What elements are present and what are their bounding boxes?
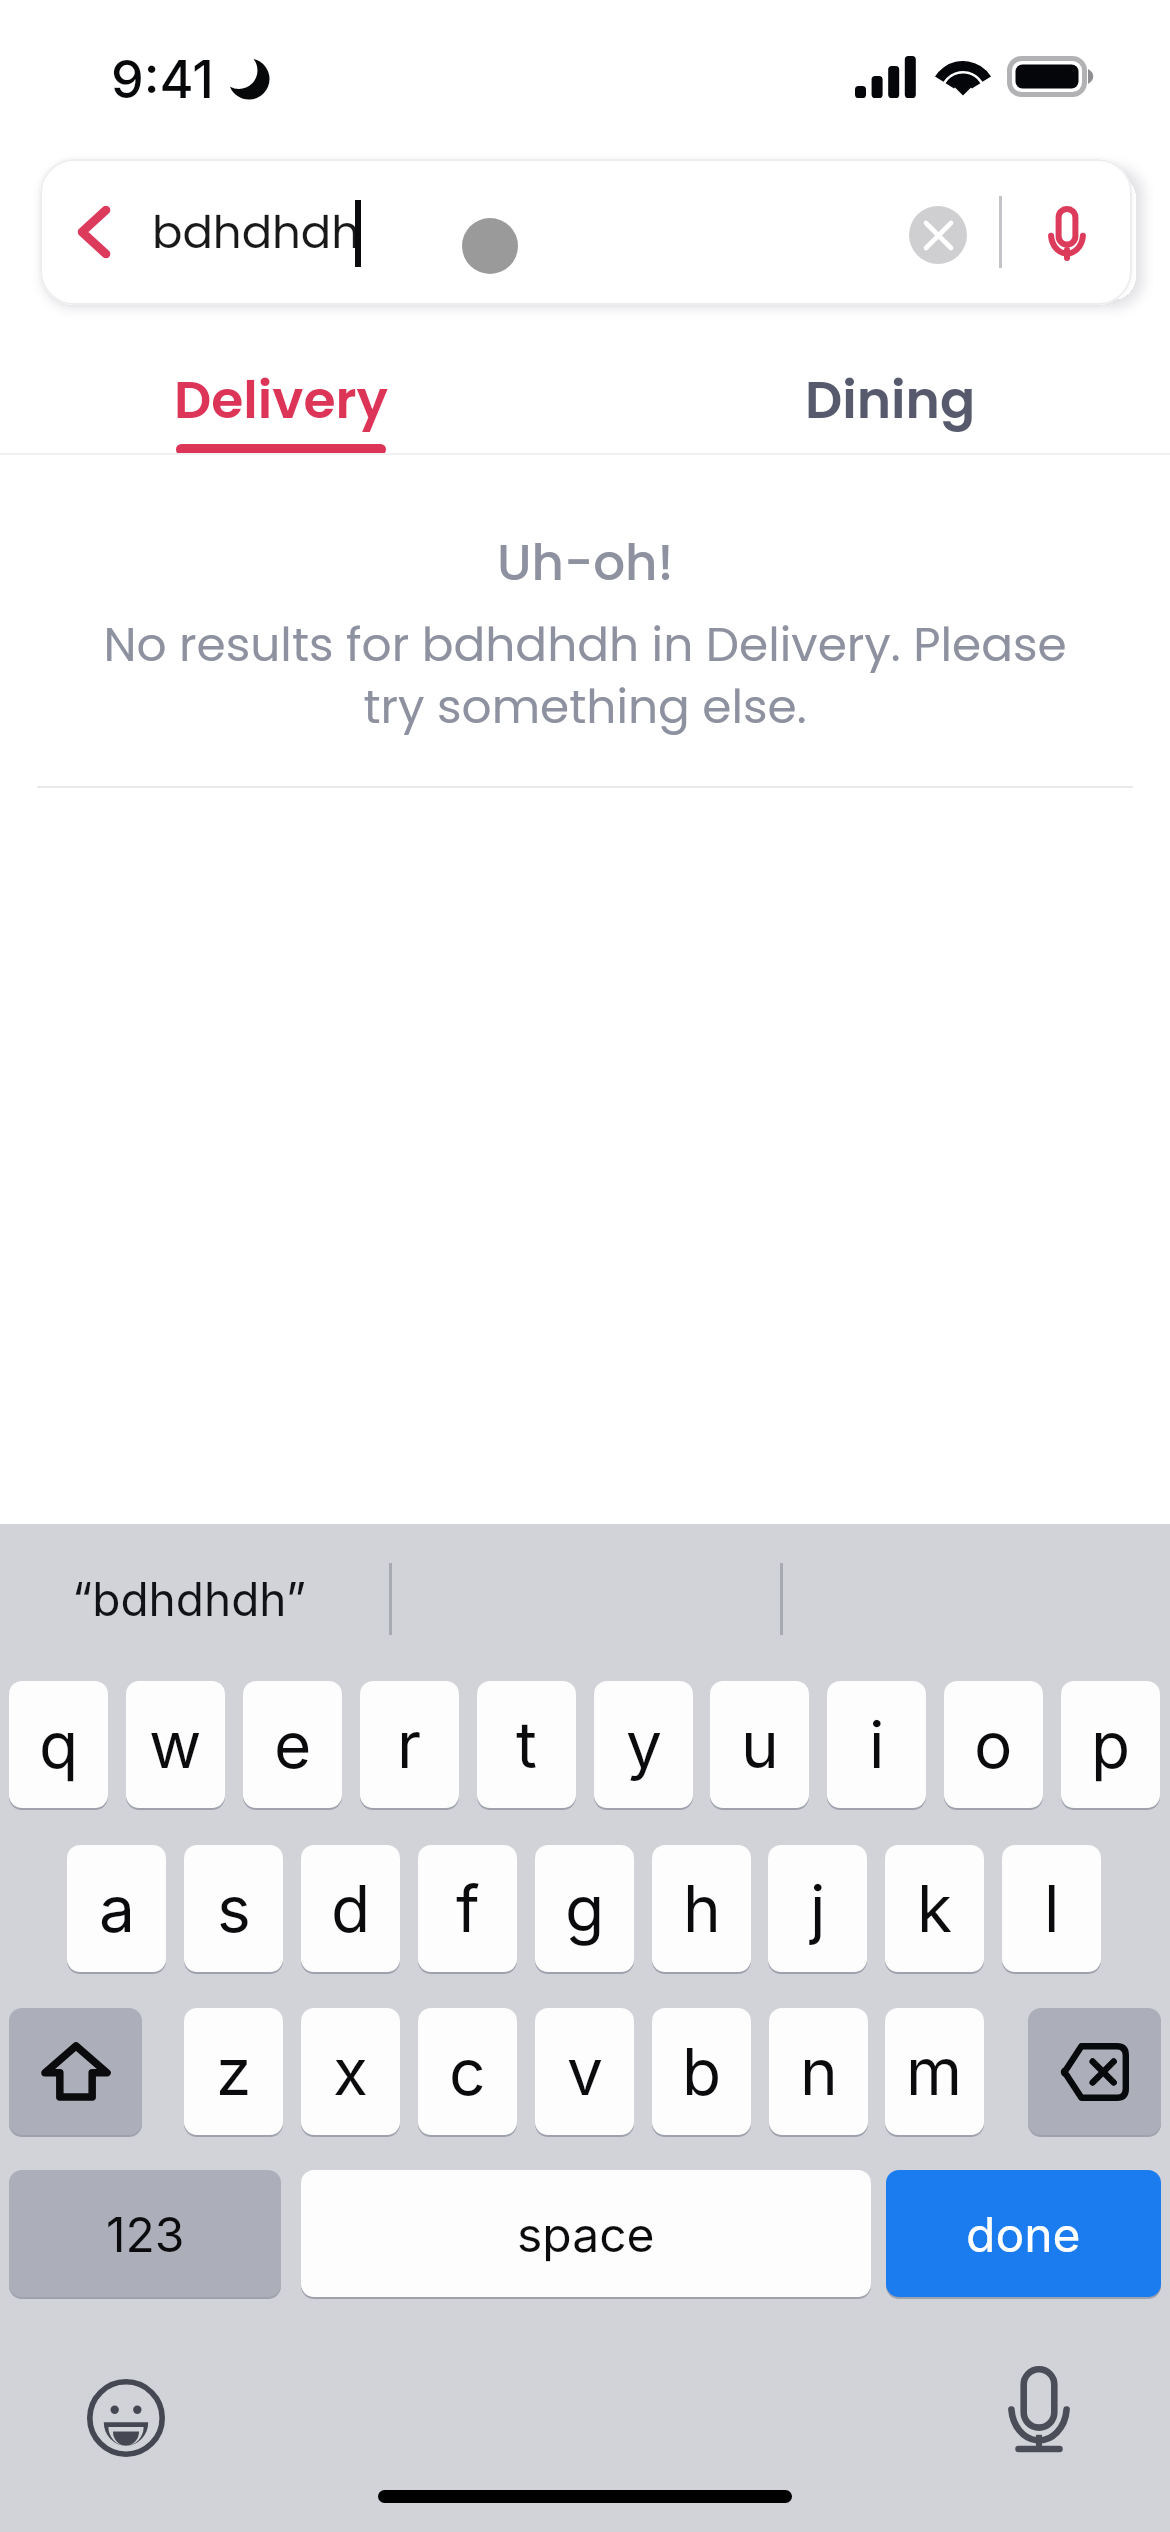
button[interactable]: Dining (598, 363, 1170, 455)
button[interactable]: h (652, 1845, 751, 1972)
button[interactable]: n (769, 2008, 868, 2135)
button[interactable]: w (126, 1681, 225, 1808)
button[interactable]: done (886, 2170, 1161, 2297)
staticText: s (217, 1870, 251, 1947)
button[interactable]: v (535, 2008, 634, 2135)
staticText: Delivery (174, 363, 388, 436)
button[interactable]: c (418, 2008, 517, 2135)
staticText: d (331, 1870, 371, 1947)
button[interactable]: Delivery (0, 363, 573, 455)
staticText: w (149, 1706, 202, 1783)
button[interactable]: space (301, 2170, 871, 2297)
staticText: b (682, 2033, 722, 2110)
button[interactable]: l (1002, 1845, 1101, 1972)
button[interactable]: Backspace (1028, 2008, 1161, 2135)
staticText: j (810, 1870, 826, 1947)
button[interactable]: m (885, 2008, 984, 2135)
staticText: v (567, 2033, 603, 2110)
staticText: t (516, 1706, 537, 1783)
button[interactable]: a (67, 1845, 166, 1972)
staticText: space (517, 2205, 655, 2263)
staticText: done (966, 2205, 1081, 2263)
staticText: y (626, 1706, 662, 1783)
button[interactable]: o (944, 1681, 1043, 1808)
button[interactable]: Back (40, 179, 148, 285)
staticText: c (449, 2033, 486, 2110)
staticText: i (869, 1706, 885, 1783)
button[interactable]: e (243, 1681, 342, 1808)
button[interactable]: Dictation (996, 2366, 1082, 2452)
button[interactable]: y (594, 1681, 693, 1808)
button[interactable]: g (535, 1845, 634, 1972)
staticText: o (974, 1706, 1013, 1783)
staticText: q (39, 1706, 79, 1783)
staticText: “bdhdhdh” (72, 1571, 306, 1627)
staticText: r (397, 1706, 422, 1783)
staticText: e (274, 1706, 312, 1783)
button[interactable]: k (885, 1845, 984, 1972)
staticText: No results for bdhdhdh in Delivery. Plea… (86, 612, 1084, 740)
staticText: g (565, 1870, 605, 1947)
button[interactable]: Emoji keyboard (86, 2378, 166, 2458)
staticText: Uh-oh! (497, 528, 674, 598)
staticText: n (800, 2033, 838, 2110)
staticText: m (906, 2033, 963, 2110)
button[interactable]: t (477, 1681, 576, 1808)
button[interactable]: p (1061, 1681, 1160, 1808)
staticText: 123 (106, 2205, 185, 2263)
button[interactable]: Clear search (893, 190, 983, 280)
button[interactable]: Shift (9, 2008, 142, 2135)
staticText: k (917, 1870, 953, 1947)
button[interactable]: u (710, 1681, 809, 1808)
staticText: x (333, 2033, 368, 2110)
staticText: a (99, 1870, 135, 1947)
staticText: 9:41 (111, 48, 214, 111)
button[interactable]: Voice search (1024, 190, 1110, 276)
button[interactable]: r (360, 1681, 459, 1808)
button[interactable]: d (301, 1845, 400, 1972)
staticText: bdhdhdh (152, 201, 361, 264)
staticText: p (1091, 1706, 1131, 1783)
button[interactable]: s (184, 1845, 283, 1972)
button[interactable]: 123 (9, 2170, 281, 2297)
button[interactable]: b (652, 2008, 751, 2135)
button[interactable]: f (418, 1845, 517, 1972)
button[interactable]: q (9, 1681, 108, 1808)
button[interactable]: z (184, 2008, 283, 2135)
staticText: Dining (805, 363, 976, 436)
staticText: z (216, 2033, 252, 2110)
staticText: f (456, 1870, 480, 1947)
staticText: h (683, 1870, 721, 1947)
button[interactable]: j (768, 1845, 867, 1972)
staticText: l (1044, 1870, 1060, 1947)
button[interactable]: i (827, 1681, 926, 1808)
button[interactable]: x (301, 2008, 400, 2135)
staticText: u (741, 1706, 779, 1783)
